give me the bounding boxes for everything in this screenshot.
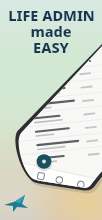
staticText: made xyxy=(30,21,72,41)
staticText: EASY xyxy=(33,37,69,57)
staticText: LIFE ADMIN xyxy=(8,5,95,25)
